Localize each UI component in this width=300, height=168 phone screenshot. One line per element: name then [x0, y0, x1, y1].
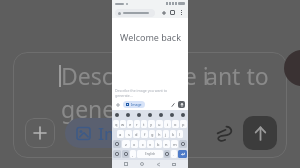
button[interactable]: Backspace [179, 140, 187, 148]
button[interactable]: r [134, 120, 140, 128]
staticText: x [133, 142, 136, 147]
button[interactable]: Settings [180, 112, 186, 118]
staticText: l [179, 132, 181, 137]
button[interactable]: q [113, 120, 119, 128]
staticText: generate... [115, 93, 133, 98]
button[interactable]: v [147, 140, 154, 148]
button[interactable]: t [141, 120, 147, 128]
staticText: i [167, 122, 169, 127]
staticText: t [143, 122, 145, 127]
staticText: e [129, 122, 132, 127]
button[interactable]: Space [137, 150, 163, 158]
staticText: y [150, 122, 153, 127]
button[interactable]: i [164, 120, 171, 128]
staticText: r [136, 122, 138, 127]
button[interactable]: f [141, 130, 148, 138]
staticText: d [135, 132, 138, 137]
staticText: b [157, 142, 160, 147]
staticText: m [173, 142, 177, 147]
button[interactable]: Send [243, 116, 277, 150]
button[interactable]: , [130, 150, 136, 158]
button[interactable]: o [172, 120, 179, 128]
button[interactable]: d [133, 130, 140, 138]
button[interactable]: Clipboard [136, 112, 142, 118]
staticText: w [121, 122, 125, 127]
staticText: Describe the image you want to [115, 88, 168, 93]
button[interactable]: Image [76, 118, 151, 148]
button[interactable]: Image [126, 101, 142, 108]
button[interactable]: Shift [113, 140, 121, 148]
staticText: c [142, 142, 144, 147]
staticText: g [151, 132, 154, 137]
button[interactable]: Mic [164, 150, 170, 158]
button[interactable]: b [155, 140, 162, 148]
button[interactable]: m [171, 140, 178, 148]
staticText: j [165, 132, 167, 137]
button[interactable] [118, 9, 152, 17]
staticText: Describe the i [61, 60, 209, 91]
staticText: Image [98, 122, 151, 145]
button[interactable]: Attach [170, 102, 176, 108]
staticText: . [173, 152, 175, 157]
button[interactable]: j [163, 130, 169, 138]
button[interactable]: Add attachment [25, 118, 55, 148]
staticText: q [115, 122, 118, 127]
button[interactable]: Emoji [122, 150, 129, 158]
button[interactable]: Symbols [113, 150, 121, 158]
button[interactable]: Translate [147, 112, 153, 118]
button[interactable]: u [156, 120, 163, 128]
button[interactable]: Keyboard [172, 162, 176, 166]
button[interactable]: More options [178, 9, 185, 16]
staticText: v [149, 142, 152, 147]
button[interactable]: Assistant [114, 112, 120, 118]
button[interactable]: Search [158, 112, 164, 118]
button[interactable]: z [122, 140, 130, 148]
button[interactable]: k [170, 130, 176, 138]
staticText: Image [131, 102, 142, 107]
button[interactable]: GIF [125, 112, 131, 118]
staticText: f [144, 132, 146, 137]
button[interactable]: Add [115, 102, 121, 108]
button[interactable]: Enter [178, 150, 187, 158]
button[interactable]: Tabs [169, 9, 176, 16]
button[interactable]: y [148, 120, 155, 128]
button[interactable]: Home [140, 162, 144, 166]
staticText: s [128, 132, 130, 137]
staticText: n [165, 142, 168, 147]
button[interactable]: Describe the i [13, 52, 287, 158]
staticText: , [132, 152, 134, 157]
button[interactable]: g [149, 130, 155, 138]
button[interactable]: Back [156, 162, 160, 166]
staticText: k [172, 132, 175, 137]
button[interactable]: c [139, 140, 146, 148]
button[interactable]: Send [178, 101, 185, 108]
other: Pointer [211, 120, 237, 146]
button[interactable]: x [131, 140, 138, 148]
staticText: ant to [205, 60, 269, 91]
button[interactable]: p [180, 120, 187, 128]
staticText: o [174, 122, 177, 127]
button[interactable]: New tab [160, 9, 167, 16]
staticText: a [119, 132, 122, 137]
button[interactable]: w [120, 120, 126, 128]
staticText: u [158, 122, 161, 127]
button[interactable]: h [156, 130, 162, 138]
staticText: generate... [61, 93, 178, 124]
staticText: p [182, 122, 185, 127]
button[interactable]: Emoji [169, 112, 175, 118]
button[interactable]: a [117, 130, 124, 138]
staticText: z [125, 142, 127, 147]
button[interactable]: Record [284, 50, 300, 86]
button[interactable]: s [125, 130, 132, 138]
staticText: h [158, 132, 161, 137]
button[interactable]: Recents [124, 162, 128, 166]
button[interactable]: . [171, 150, 177, 158]
button[interactable]: n [163, 140, 170, 148]
staticText: English [145, 152, 156, 156]
staticText: Welcome back [120, 31, 181, 43]
button[interactable]: e [127, 120, 133, 128]
button[interactable]: l [177, 130, 183, 138]
